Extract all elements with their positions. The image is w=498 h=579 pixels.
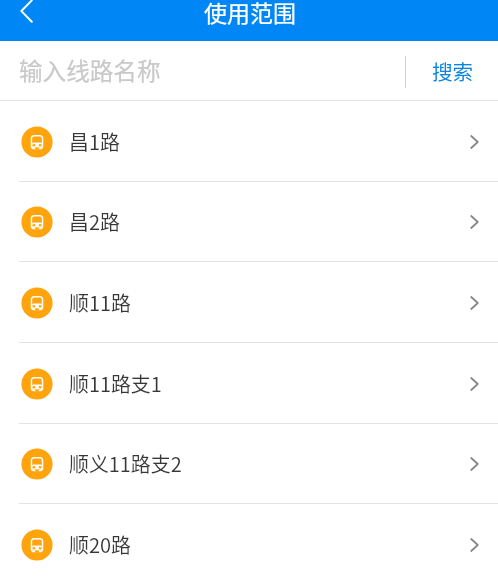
staticText: 顺20路: [69, 530, 131, 559]
staticText: 使用范围: [204, 0, 296, 28]
staticText: 顺义11路支2: [69, 449, 182, 478]
staticText: 搜索: [432, 56, 474, 86]
button[interactable]: 昌1路: [0, 101, 498, 182]
staticText: 昌1路: [69, 127, 120, 156]
button[interactable]: 搜索: [406, 41, 498, 101]
staticText: 顺11路支1: [69, 369, 162, 398]
button[interactable]: 顺11路: [0, 262, 498, 343]
button[interactable]: Back: [0, 0, 46, 41]
button[interactable]: 顺20路: [0, 504, 498, 579]
staticText: 输入线路名称: [19, 53, 161, 87]
staticText: 昌2路: [69, 207, 120, 236]
button[interactable]: 昌2路: [0, 181, 498, 262]
button[interactable]: 顺11路支1: [0, 343, 498, 424]
staticText: 顺11路: [69, 288, 131, 317]
button[interactable]: 顺义11路支2: [0, 423, 498, 504]
